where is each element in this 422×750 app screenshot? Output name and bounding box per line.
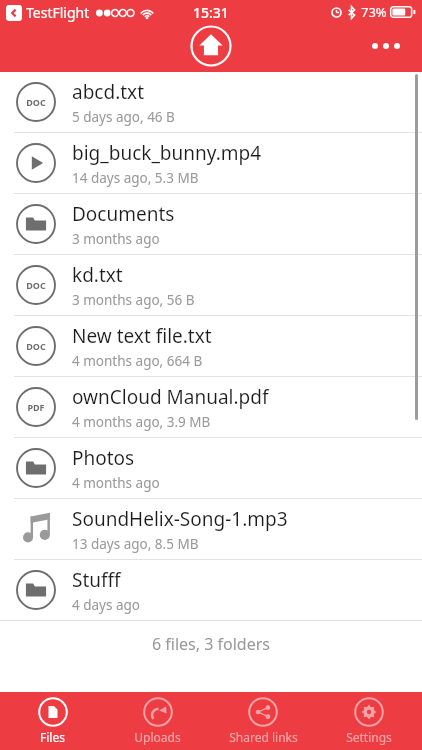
- button[interactable]: Files: [0, 692, 105, 750]
- button[interactable]: Settings: [316, 692, 422, 750]
- button[interactable]: Uploads: [105, 692, 210, 750]
- staticText: ownCloud Manual.pdf: [72, 384, 269, 410]
- staticText: DOC: [26, 96, 46, 108]
- staticText: 4 months ago, 664 B: [72, 352, 203, 370]
- staticText: 14 days ago, 5.3 MB: [72, 169, 199, 187]
- button[interactable]: SoundHelix-Song-1.mp3: [0, 499, 422, 559]
- staticText: 15:31: [193, 3, 229, 22]
- staticText: big_buck_bunny.mp4: [72, 140, 262, 166]
- staticText: 3 months ago: [72, 230, 160, 248]
- staticText: kd.txt: [72, 262, 123, 288]
- button[interactable]: Documents: [0, 194, 422, 254]
- staticText: Uploads: [134, 729, 181, 745]
- staticText: 6 files, 3 folders: [152, 633, 270, 655]
- staticText: PDF: [27, 401, 45, 413]
- button[interactable]: Shared links: [210, 692, 316, 750]
- button[interactable]: Photos: [0, 438, 422, 498]
- staticText: Documents: [72, 201, 175, 227]
- staticText: Stufff: [72, 567, 121, 593]
- button[interactable]: DOC: [0, 316, 422, 376]
- staticText: Settings: [346, 729, 392, 745]
- button[interactable]: Home: [190, 25, 232, 67]
- staticText: TestFlight: [26, 3, 90, 22]
- staticText: SoundHelix-Song-1.mp3: [72, 506, 288, 532]
- button[interactable]: More options: [360, 24, 412, 68]
- staticText: Shared links: [229, 729, 298, 745]
- staticText: 3 months ago, 56 B: [72, 291, 195, 309]
- button[interactable]: Stufff: [0, 560, 422, 620]
- staticText: 4 days ago: [72, 596, 141, 614]
- button[interactable]: PDF: [0, 377, 422, 437]
- staticText: New text file.txt: [72, 323, 212, 349]
- staticText: DOC: [26, 279, 46, 291]
- staticText: 4 months ago: [72, 474, 160, 492]
- button[interactable]: DOC: [0, 255, 422, 315]
- button[interactable]: DOC: [0, 72, 422, 132]
- staticText: DOC: [26, 340, 46, 352]
- staticText: 73%: [361, 3, 387, 21]
- staticText: Files: [40, 729, 65, 745]
- staticText: Photos: [72, 445, 135, 471]
- staticText: 4 months ago, 3.9 MB: [72, 413, 211, 431]
- staticText: 13 days ago, 8.5 MB: [72, 535, 199, 553]
- button[interactable]: big_buck_bunny.mp4: [0, 133, 422, 193]
- staticText: 5 days ago, 46 B: [72, 108, 175, 126]
- staticText: abcd.txt: [72, 79, 145, 105]
